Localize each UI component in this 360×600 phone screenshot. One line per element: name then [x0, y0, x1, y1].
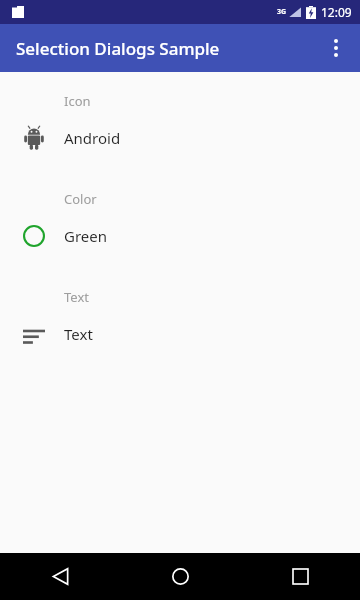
staticText: Text — [64, 324, 93, 344]
button[interactable]: Back — [0, 553, 120, 600]
staticText: Green — [64, 226, 108, 246]
staticText: 3G — [277, 7, 287, 17]
button[interactable]: Green — [0, 212, 360, 260]
staticText: Icon — [64, 92, 91, 110]
button[interactable]: Home — [120, 553, 240, 600]
button[interactable]: Android — [0, 114, 360, 162]
button[interactable]: Text — [0, 310, 360, 358]
button[interactable]: More options — [312, 24, 360, 72]
staticText: 12:09 — [321, 4, 352, 20]
staticText: Selection Dialogs Sample — [16, 37, 220, 60]
staticText: Android — [64, 128, 121, 148]
button[interactable]: Recent apps — [240, 553, 360, 600]
staticText: Color — [64, 190, 97, 208]
staticText: Text — [64, 288, 89, 306]
